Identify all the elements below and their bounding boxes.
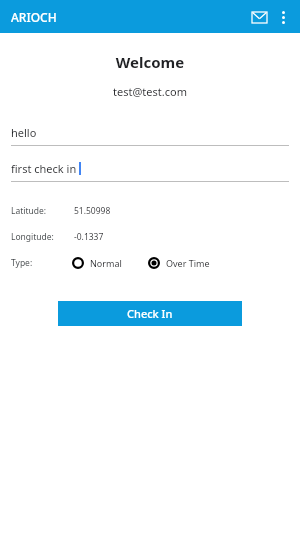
staticText: Normal [90,257,122,269]
button[interactable]: Over Time [146,255,212,271]
staticText: Type: [11,257,33,269]
staticText: Welcome [0,52,300,72]
staticText: hello [11,125,37,140]
staticText: Over Time [166,257,210,269]
staticText: test@test.com [0,84,300,99]
staticText: Longitude: [11,231,54,243]
staticText: first check in [11,161,77,176]
staticText: Latitude: [11,205,47,217]
button[interactable]: Check In [58,301,242,326]
staticText: ARIOCH [11,9,57,25]
button[interactable]: first check in [11,161,289,182]
button[interactable]: More options [272,6,294,28]
button[interactable]: Normal [70,255,124,271]
staticText: -0.1337 [74,231,104,243]
staticText: 51.50998 [74,205,111,217]
button[interactable]: hello [11,125,289,146]
staticText: Check In [127,306,173,321]
button[interactable]: Messages [246,4,272,30]
